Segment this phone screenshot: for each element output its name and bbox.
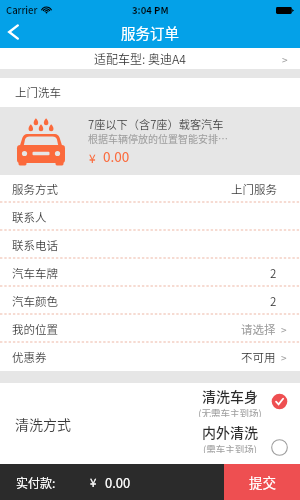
button[interactable]: 联系电话: [0, 231, 300, 259]
button[interactable]: Back: [0, 18, 34, 46]
staticText: 0.00: [103, 146, 130, 166]
button[interactable]: 实付款:: [0, 464, 224, 500]
staticText: (需车主到场): [203, 442, 257, 453]
button[interactable]: 优惠券: [0, 343, 300, 371]
staticText: 汽车车牌: [12, 265, 58, 282]
staticText: (无需车主到场): [198, 406, 262, 417]
button[interactable]: 清洗车身: [185, 386, 293, 417]
staticText: 请选择: [241, 321, 276, 338]
staticText: 服务订单: [121, 22, 179, 43]
button[interactable]: 我的位置: [0, 315, 300, 343]
button[interactable]: 7座以下（含7座）载客汽车: [0, 107, 300, 175]
staticText: >: [282, 52, 288, 66]
button[interactable]: 汽车车牌: [0, 259, 300, 287]
staticText: 7座以下（含7座）载客汽车: [88, 116, 224, 132]
button[interactable]: 服务方式: [0, 175, 300, 203]
staticText: 我的位置: [12, 321, 58, 338]
staticText: 根据车辆停放的位置智能安排…: [88, 131, 228, 145]
button[interactable]: 汽车颜色: [0, 287, 300, 315]
staticText: 上门服务: [231, 181, 277, 198]
staticText: 联系人: [12, 209, 47, 226]
button[interactable]: 联系人: [0, 203, 300, 231]
staticText: 内外清洗: [202, 422, 258, 442]
staticText: 清洗方式: [15, 414, 71, 434]
staticText: 2: [270, 265, 277, 282]
staticText: 2: [270, 293, 277, 310]
button[interactable]: 适配车型: 奥迪A4: [0, 48, 300, 69]
staticText: ¥: [89, 149, 96, 166]
button[interactable]: 提交: [224, 464, 300, 500]
button[interactable]: 内外清洗: [185, 422, 293, 453]
staticText: 优惠券: [12, 349, 47, 366]
staticText: 3:04 PM: [132, 3, 169, 17]
staticText: 适配车型: 奥迪A4: [94, 50, 186, 67]
staticText: 提交: [249, 472, 276, 492]
staticText: 0.00: [105, 473, 131, 492]
staticText: 汽车颜色: [12, 293, 58, 310]
staticText: 清洗车身: [202, 386, 258, 406]
staticText: ¥: [90, 474, 97, 491]
staticText: Carrier: [6, 3, 38, 17]
staticText: >: [281, 322, 287, 336]
staticText: 上门洗车: [15, 84, 61, 101]
staticText: 服务方式: [12, 181, 58, 198]
staticText: >: [281, 350, 287, 364]
staticText: 不可用: [241, 349, 276, 366]
staticText: 实付款:: [16, 474, 56, 491]
staticText: 联系电话: [12, 237, 58, 254]
